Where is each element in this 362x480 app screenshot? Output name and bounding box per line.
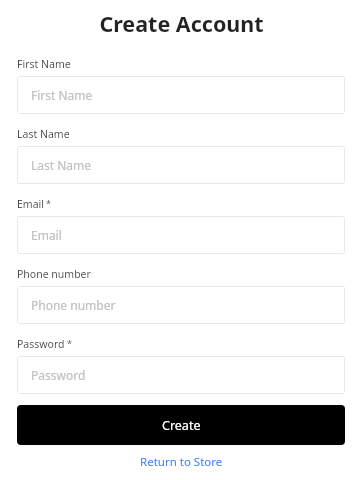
staticText: Password	[17, 337, 65, 351]
button[interactable]: Password	[17, 356, 345, 394]
staticText: Create Account	[99, 9, 264, 38]
staticText: Email	[17, 197, 44, 211]
staticText: *	[67, 337, 72, 349]
staticText: Create	[162, 417, 201, 434]
button[interactable]: Return to Store	[132, 450, 231, 474]
button[interactable]: Phone number	[17, 286, 345, 324]
staticText: Email	[31, 227, 62, 243]
staticText: First Name	[17, 57, 71, 71]
staticText: Password	[31, 367, 86, 383]
staticText: Phone number	[17, 267, 91, 281]
staticText: Last Name	[17, 127, 70, 141]
button[interactable]: Create	[17, 405, 345, 445]
staticText: Return to Store	[140, 454, 223, 470]
staticText: Last Name	[31, 157, 92, 173]
staticText: *	[46, 197, 51, 209]
button[interactable]: Email	[17, 216, 345, 254]
staticText: First Name	[31, 87, 93, 103]
staticText: Phone number	[31, 297, 116, 313]
button[interactable]: First Name	[17, 76, 345, 114]
button[interactable]: Last Name	[17, 146, 345, 184]
